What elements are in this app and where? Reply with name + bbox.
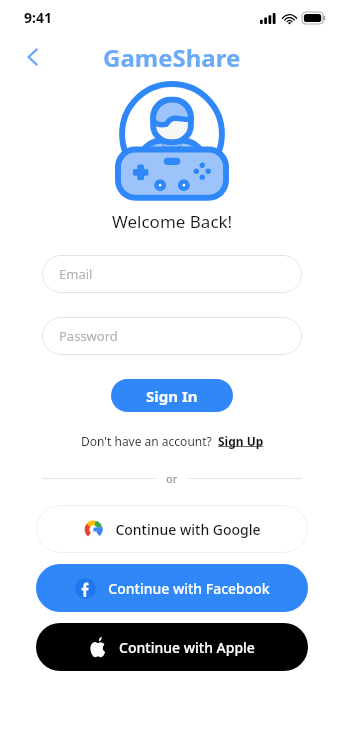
staticText: Password bbox=[59, 327, 118, 345]
staticText: Email bbox=[59, 265, 93, 283]
staticText: Continue with Facebook bbox=[108, 579, 270, 598]
staticText: GameShare bbox=[103, 41, 241, 74]
button[interactable]: Continue with Google bbox=[36, 505, 308, 553]
staticText: or bbox=[166, 471, 178, 486]
staticText: Continue with Google bbox=[115, 520, 261, 539]
button[interactable]: Continue with Facebook bbox=[36, 564, 308, 612]
staticText: Welcome Back! bbox=[112, 210, 233, 233]
button[interactable]: Password bbox=[42, 317, 302, 355]
button[interactable]: Email bbox=[42, 255, 302, 293]
button[interactable]: Back bbox=[14, 39, 50, 75]
staticText: 9:41 bbox=[24, 8, 52, 27]
staticText: Continue with Apple bbox=[119, 638, 255, 657]
staticText: Don't have an account? bbox=[81, 433, 212, 449]
staticText: Sign Up bbox=[218, 433, 264, 449]
button[interactable]: Sign In bbox=[111, 379, 233, 412]
staticText: Sign In bbox=[146, 386, 198, 406]
button[interactable]: Sign Up bbox=[218, 433, 264, 449]
button[interactable]: Continue with Apple bbox=[36, 623, 308, 671]
